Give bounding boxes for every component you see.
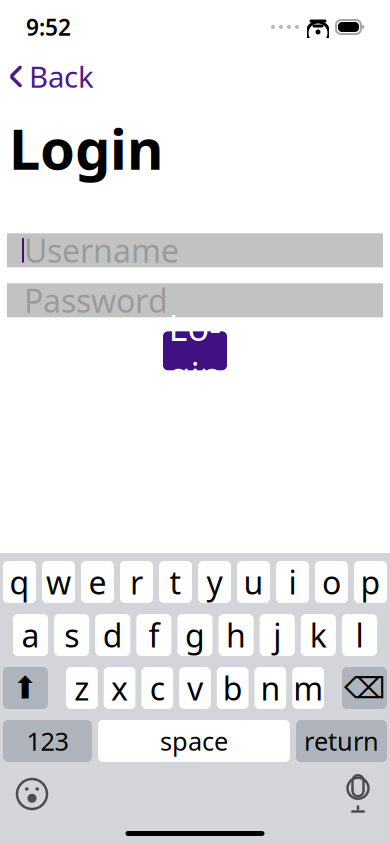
button[interactable]: c — [141, 667, 173, 709]
button[interactable]: Back — [9, 54, 94, 99]
button[interactable]: p — [354, 561, 387, 603]
button[interactable]: e — [81, 561, 114, 603]
button[interactable]: Username — [7, 233, 383, 267]
staticText: Login — [9, 111, 163, 185]
staticText: c — [150, 667, 165, 709]
button[interactable]: k — [301, 614, 336, 656]
button[interactable]: Delete — [342, 667, 387, 709]
button[interactable]: v — [179, 667, 211, 709]
staticText: Username — [24, 229, 179, 272]
staticText: t — [169, 561, 181, 603]
staticText: return — [304, 724, 379, 758]
button[interactable]: Login — [163, 331, 227, 370]
staticText: o — [322, 561, 341, 603]
button[interactable]: Shift — [3, 667, 48, 709]
staticText: z — [74, 667, 89, 709]
staticText: i — [288, 561, 296, 603]
button[interactable]: return — [296, 720, 387, 762]
button[interactable]: a — [13, 614, 48, 656]
staticText: ⬆ — [12, 671, 38, 705]
staticText: Password — [24, 279, 168, 322]
button[interactable]: space — [98, 720, 290, 762]
button[interactable]: u — [237, 561, 270, 603]
button[interactable]: s — [54, 614, 89, 656]
staticText: k — [310, 614, 327, 656]
staticText: u — [243, 561, 263, 603]
staticText: r — [130, 561, 143, 603]
staticText: f — [148, 614, 159, 656]
button[interactable]: m — [292, 667, 324, 709]
button[interactable]: j — [260, 614, 295, 656]
button[interactable]: y — [198, 561, 231, 603]
button[interactable]: g — [177, 614, 212, 656]
button[interactable]: 123 — [3, 720, 92, 762]
staticText: Back — [29, 57, 94, 96]
staticText: space — [160, 724, 228, 758]
button[interactable]: h — [219, 614, 254, 656]
button[interactable]: l — [342, 614, 377, 656]
button[interactable]: f — [136, 614, 171, 656]
button[interactable]: q — [3, 561, 36, 603]
staticText: Login — [168, 303, 221, 399]
staticText: j — [273, 614, 281, 656]
staticText: ⌫ — [344, 671, 385, 705]
staticText: e — [88, 561, 106, 603]
staticText: q — [9, 561, 29, 603]
staticText: 9:52 — [26, 12, 71, 42]
button[interactable]: o — [315, 561, 348, 603]
staticText: l — [355, 614, 363, 656]
staticText: n — [260, 667, 280, 709]
button[interactable]: t — [159, 561, 192, 603]
staticText: 123 — [26, 724, 68, 758]
button[interactable]: Password — [7, 283, 383, 317]
button[interactable]: b — [217, 667, 249, 709]
staticText: h — [226, 614, 246, 656]
button[interactable]: Emoji — [10, 776, 54, 812]
button[interactable]: z — [66, 667, 98, 709]
button[interactable]: w — [42, 561, 75, 603]
staticText: v — [187, 667, 203, 709]
button[interactable]: n — [255, 667, 286, 709]
staticText: y — [206, 561, 222, 603]
button[interactable]: Dictation — [336, 776, 380, 812]
button[interactable]: d — [95, 614, 130, 656]
button[interactable]: r — [120, 561, 153, 603]
button[interactable]: i — [276, 561, 309, 603]
button[interactable]: x — [104, 667, 135, 709]
staticText: d — [103, 614, 123, 656]
staticText: b — [223, 667, 243, 709]
staticText: s — [64, 614, 79, 656]
staticText: p — [360, 561, 380, 603]
staticText: a — [22, 614, 40, 656]
staticText: m — [293, 667, 323, 709]
staticText: x — [111, 667, 128, 709]
staticText: w — [46, 561, 71, 603]
staticText: g — [185, 614, 205, 656]
